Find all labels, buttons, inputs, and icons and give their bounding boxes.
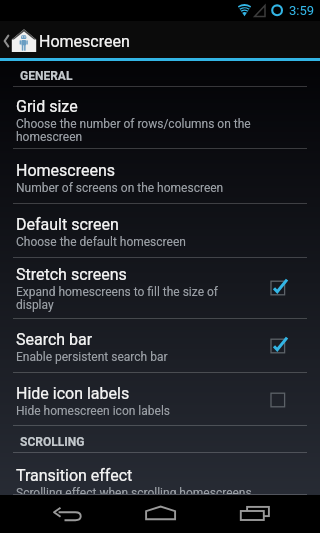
staticText: Number of screens on the homescreen: [16, 181, 224, 195]
staticText: Expand homescreens to fill the size of d…: [16, 285, 254, 312]
staticText: Homescreen: [39, 32, 130, 51]
staticText: GENERAL: [20, 69, 73, 83]
button[interactable]: Default screen: [0, 204, 320, 257]
staticText: Search bar: [16, 330, 93, 349]
button[interactable]: Checked: [255, 275, 320, 301]
staticText: Hide icon labels: [16, 384, 130, 403]
staticText: Grid size: [16, 97, 78, 116]
staticText: SCROLLING: [20, 435, 85, 449]
staticText: Choose the default homescreen: [16, 235, 186, 249]
button[interactable]: Up: [0, 21, 320, 58]
button[interactable]: Back: [0, 495, 114, 533]
button[interactable]: Grid size: [0, 87, 320, 148]
staticText: Stretch screens: [16, 265, 127, 284]
button[interactable]: Home: [114, 495, 207, 533]
button[interactable]: Search bar: [0, 319, 320, 372]
button[interactable]: Unchecked: [255, 387, 320, 413]
staticText: Scrolling effect when scrolling homescre…: [16, 486, 252, 494]
button[interactable]: Transition effect: [0, 453, 320, 494]
staticText: Homescreens: [16, 161, 116, 180]
button[interactable]: Homescreens: [0, 149, 320, 203]
staticText: Enable persistent search bar: [16, 350, 168, 364]
button[interactable]: Recent apps: [207, 495, 320, 533]
staticText: Hide homescreen icon labels: [16, 404, 170, 418]
staticText: Default screen: [16, 215, 119, 234]
button[interactable]: Stretch screens: [0, 258, 320, 318]
staticText: Choose the number of rows/columns on the…: [16, 117, 307, 144]
button[interactable]: Hide icon labels: [0, 373, 320, 425]
staticText: 3:59: [289, 3, 315, 18]
staticText: Transition effect: [16, 466, 133, 485]
button[interactable]: Checked: [255, 333, 320, 359]
